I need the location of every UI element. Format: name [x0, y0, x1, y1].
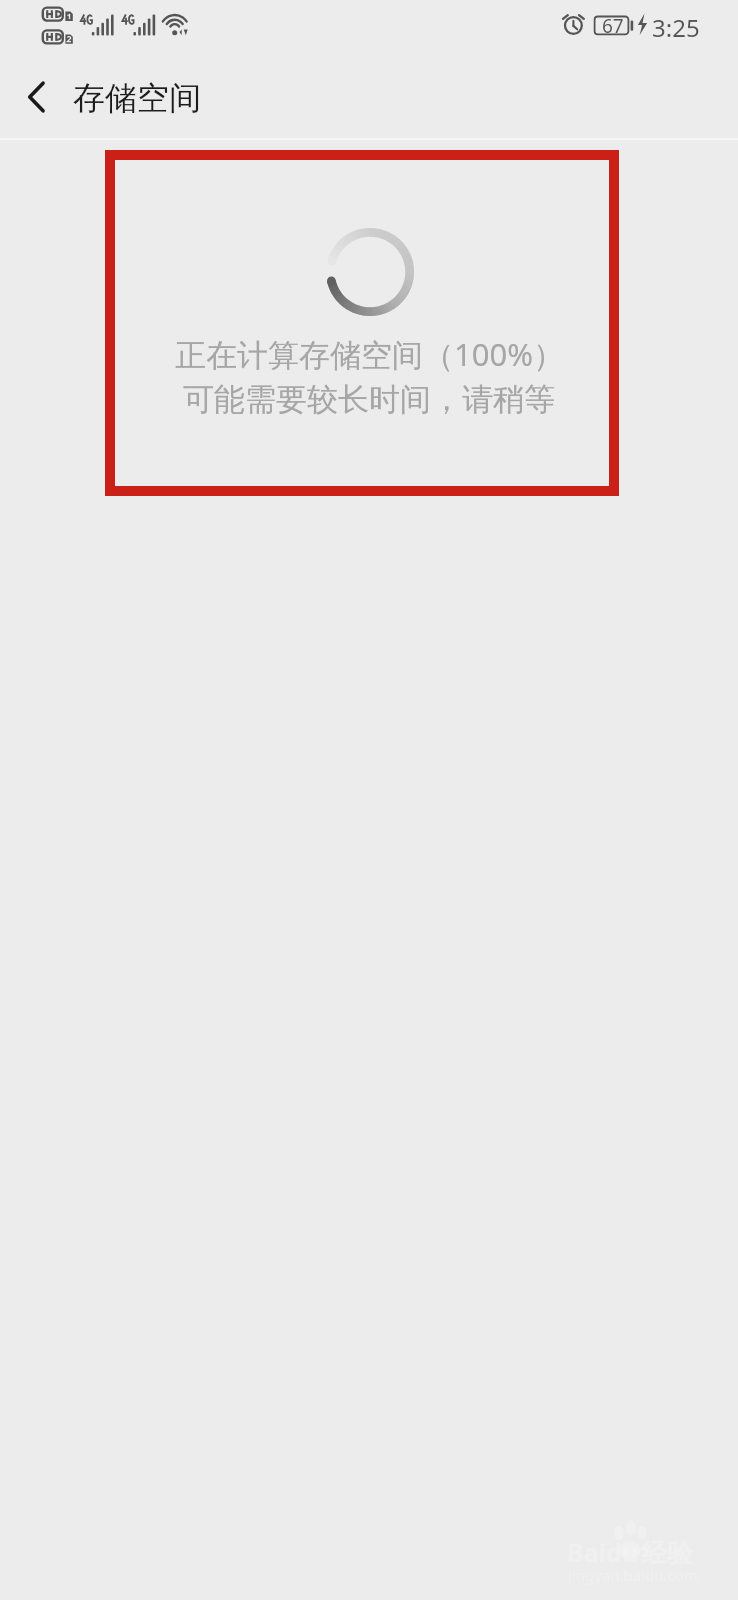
staticText: 3:25 — [652, 11, 700, 44]
staticText: 存储空间 — [73, 78, 201, 118]
staticText: 正在计算存储空间（100%） — [175, 333, 564, 375]
staticText: 67 — [602, 13, 624, 39]
button[interactable]: Back — [0, 60, 71, 138]
staticText: 可能需要较长时间，请稍等 — [183, 380, 555, 419]
